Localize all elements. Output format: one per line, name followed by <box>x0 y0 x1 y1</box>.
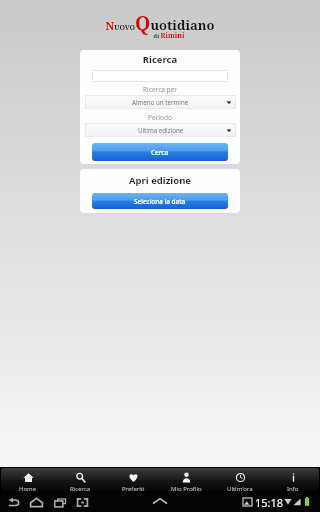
staticText: Ricerca per <box>80 85 240 94</box>
staticText: Ricerca <box>80 53 240 66</box>
staticText: Preferiti <box>122 485 145 491</box>
button[interactable]: Info <box>266 468 319 491</box>
staticText: Mio Profilo <box>171 485 202 491</box>
staticText: Ultima edizione <box>138 126 184 134</box>
button[interactable]: Ricerca <box>54 468 107 491</box>
staticText: Periodo <box>80 113 240 122</box>
staticText: Apri edizione <box>80 174 240 187</box>
button[interactable]: Ultim'ora <box>213 468 266 491</box>
button[interactable] <box>92 70 228 82</box>
staticText: Seleziona la data <box>134 197 186 206</box>
button[interactable]: Ultima edizione <box>85 123 236 137</box>
button[interactable]: Screenshot <box>76 497 89 508</box>
button[interactable]: Home <box>1 468 54 491</box>
staticText: di Rimini <box>9 31 320 41</box>
button[interactable]: Cerca <box>92 143 228 161</box>
button[interactable]: Almeno un termine <box>85 95 236 109</box>
staticText: Info <box>287 485 299 491</box>
button[interactable]: Back <box>8 497 20 508</box>
staticText: Ultim'ora <box>227 485 253 491</box>
button[interactable]: Expand <box>150 495 170 509</box>
staticText: Ricerca <box>70 485 91 491</box>
button[interactable]: Recent apps <box>54 497 66 508</box>
staticText: NUOVOQuotidiano <box>0 9 320 36</box>
staticText: Almeno un termine <box>132 98 189 106</box>
button[interactable]: Preferiti <box>107 468 160 491</box>
button[interactable]: Mio Profilo <box>160 468 213 491</box>
button[interactable]: Home <box>30 497 43 508</box>
staticText: 15:18 <box>255 495 284 510</box>
staticText: Cerca <box>151 148 169 157</box>
staticText: Home <box>19 485 37 491</box>
button[interactable]: Seleziona la data <box>92 193 228 209</box>
